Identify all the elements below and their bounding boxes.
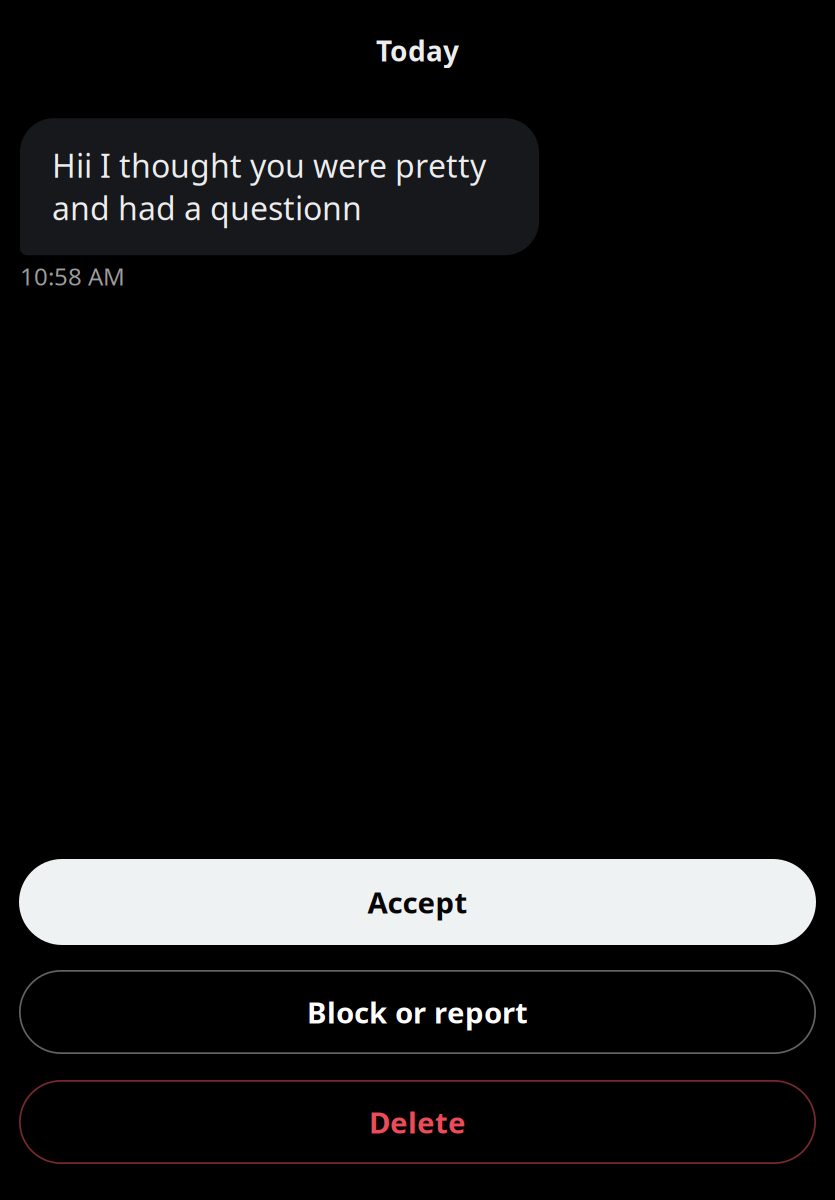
- button[interactable]: Block or report: [19, 970, 816, 1054]
- staticText: Delete: [369, 1102, 466, 1141]
- staticText: Block or report: [307, 992, 528, 1031]
- staticText: Hii I thought you were pretty and had a …: [52, 144, 486, 229]
- button[interactable]: Accept: [19, 859, 816, 945]
- staticText: Accept: [367, 882, 467, 921]
- button[interactable]: Delete: [19, 1080, 816, 1164]
- staticText: Today: [376, 32, 459, 69]
- staticText: 10:58 AM: [20, 260, 125, 292]
